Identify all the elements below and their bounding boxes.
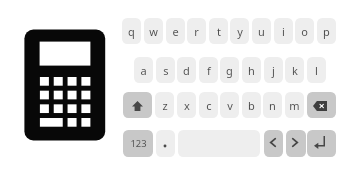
button[interactable]: h — [242, 57, 261, 83]
button[interactable]: e — [166, 18, 185, 44]
button[interactable]: Backspace — [307, 92, 336, 118]
staticText: r — [194, 24, 199, 39]
staticText: q — [128, 24, 135, 39]
button[interactable]: w — [144, 18, 163, 44]
staticText: y — [237, 24, 243, 39]
staticText: g — [226, 63, 233, 78]
staticText: b — [248, 98, 255, 113]
button[interactable]: z — [155, 92, 174, 118]
staticText: s — [163, 63, 169, 78]
button[interactable]: Previous — [264, 130, 283, 157]
staticText: d — [183, 63, 190, 78]
button[interactable]: Enter — [307, 130, 336, 157]
button[interactable]: d — [177, 57, 196, 83]
button[interactable]: j — [264, 57, 283, 83]
button[interactable]: u — [252, 18, 271, 44]
staticText: a — [140, 63, 147, 78]
staticText: 123 — [130, 137, 147, 150]
button[interactable]: Shift — [123, 92, 152, 118]
button[interactable]: l — [307, 57, 326, 83]
button[interactable]: 123 — [123, 130, 153, 157]
staticText: c — [206, 98, 212, 113]
staticText: n — [269, 98, 276, 113]
button[interactable]: r — [187, 18, 206, 44]
button[interactable]: f — [199, 57, 218, 83]
staticText: v — [227, 98, 233, 113]
staticText: t — [217, 24, 221, 39]
staticText: p — [323, 24, 330, 39]
button[interactable]: Period — [156, 130, 175, 157]
button[interactable]: o — [295, 18, 314, 44]
staticText: l — [315, 63, 318, 78]
staticText: i — [282, 24, 285, 39]
button[interactable]: b — [242, 92, 261, 118]
button[interactable]: m — [285, 92, 304, 118]
button[interactable]: x — [177, 92, 196, 118]
staticText: w — [149, 24, 158, 39]
button[interactable]: s — [156, 57, 175, 83]
staticText: u — [258, 24, 265, 39]
staticText: k — [292, 63, 298, 78]
staticText: f — [207, 63, 211, 78]
staticText: h — [248, 63, 255, 78]
button[interactable]: Next — [286, 130, 306, 157]
staticText: m — [289, 98, 300, 113]
button[interactable]: i — [274, 18, 293, 44]
staticText: j — [272, 63, 275, 78]
button[interactable]: q — [122, 18, 141, 44]
button[interactable]: v — [220, 92, 239, 118]
staticText: x — [184, 98, 190, 113]
button[interactable]: k — [285, 57, 304, 83]
button[interactable]: a — [134, 57, 153, 83]
staticText: o — [301, 24, 308, 39]
button[interactable]: n — [263, 92, 282, 118]
staticText: z — [162, 98, 168, 113]
button[interactable]: c — [199, 92, 218, 118]
button[interactable]: t — [209, 18, 228, 44]
button[interactable]: y — [230, 18, 249, 44]
button[interactable]: g — [220, 57, 239, 83]
staticText: e — [172, 24, 179, 39]
button[interactable]: p — [317, 18, 336, 44]
